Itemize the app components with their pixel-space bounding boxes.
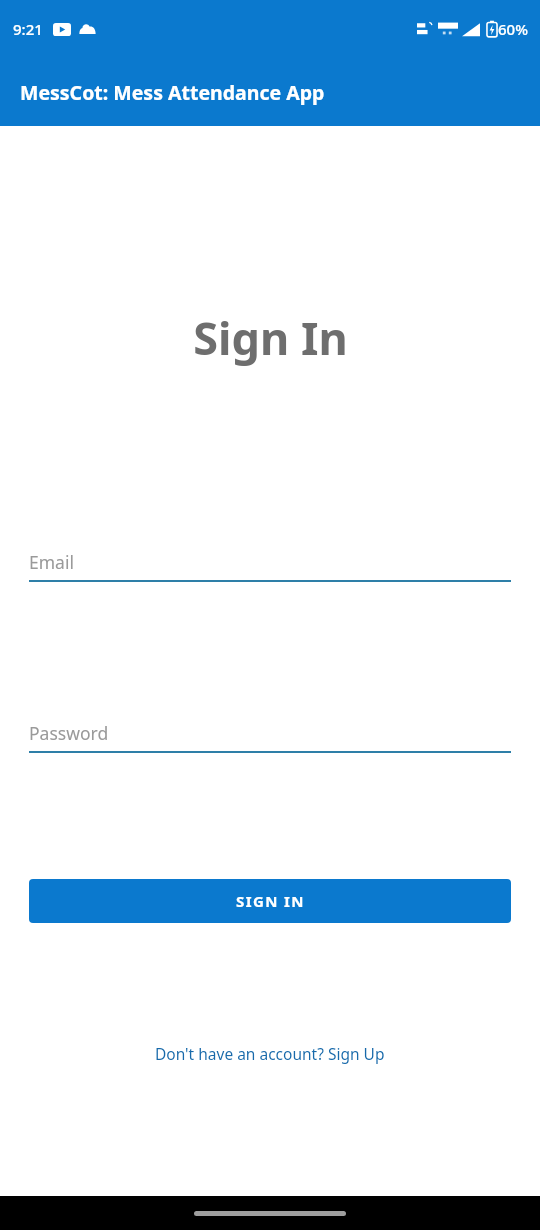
other: YouTube <box>53 23 71 36</box>
staticText: Email <box>29 550 74 574</box>
staticText: 9:21 <box>13 19 43 39</box>
staticText: SIGN IN <box>236 891 305 911</box>
staticText: 60% <box>498 19 528 39</box>
staticText: Sign In <box>193 307 348 368</box>
button[interactable]: Don't have an account? Sign Up <box>149 1039 391 1068</box>
other: Battery 60 percent <box>486 20 498 38</box>
button[interactable]: SIGN IN <box>29 879 511 923</box>
button[interactable]: Password <box>29 721 511 753</box>
staticText: Don't have an account? Sign Up <box>155 1043 385 1064</box>
other: Signal strength <box>462 22 480 37</box>
button[interactable]: Email <box>29 550 511 582</box>
staticText: MessCot: Mess Attendance App <box>20 79 325 106</box>
staticText: Password <box>29 721 109 745</box>
other: Cloud <box>79 23 96 35</box>
